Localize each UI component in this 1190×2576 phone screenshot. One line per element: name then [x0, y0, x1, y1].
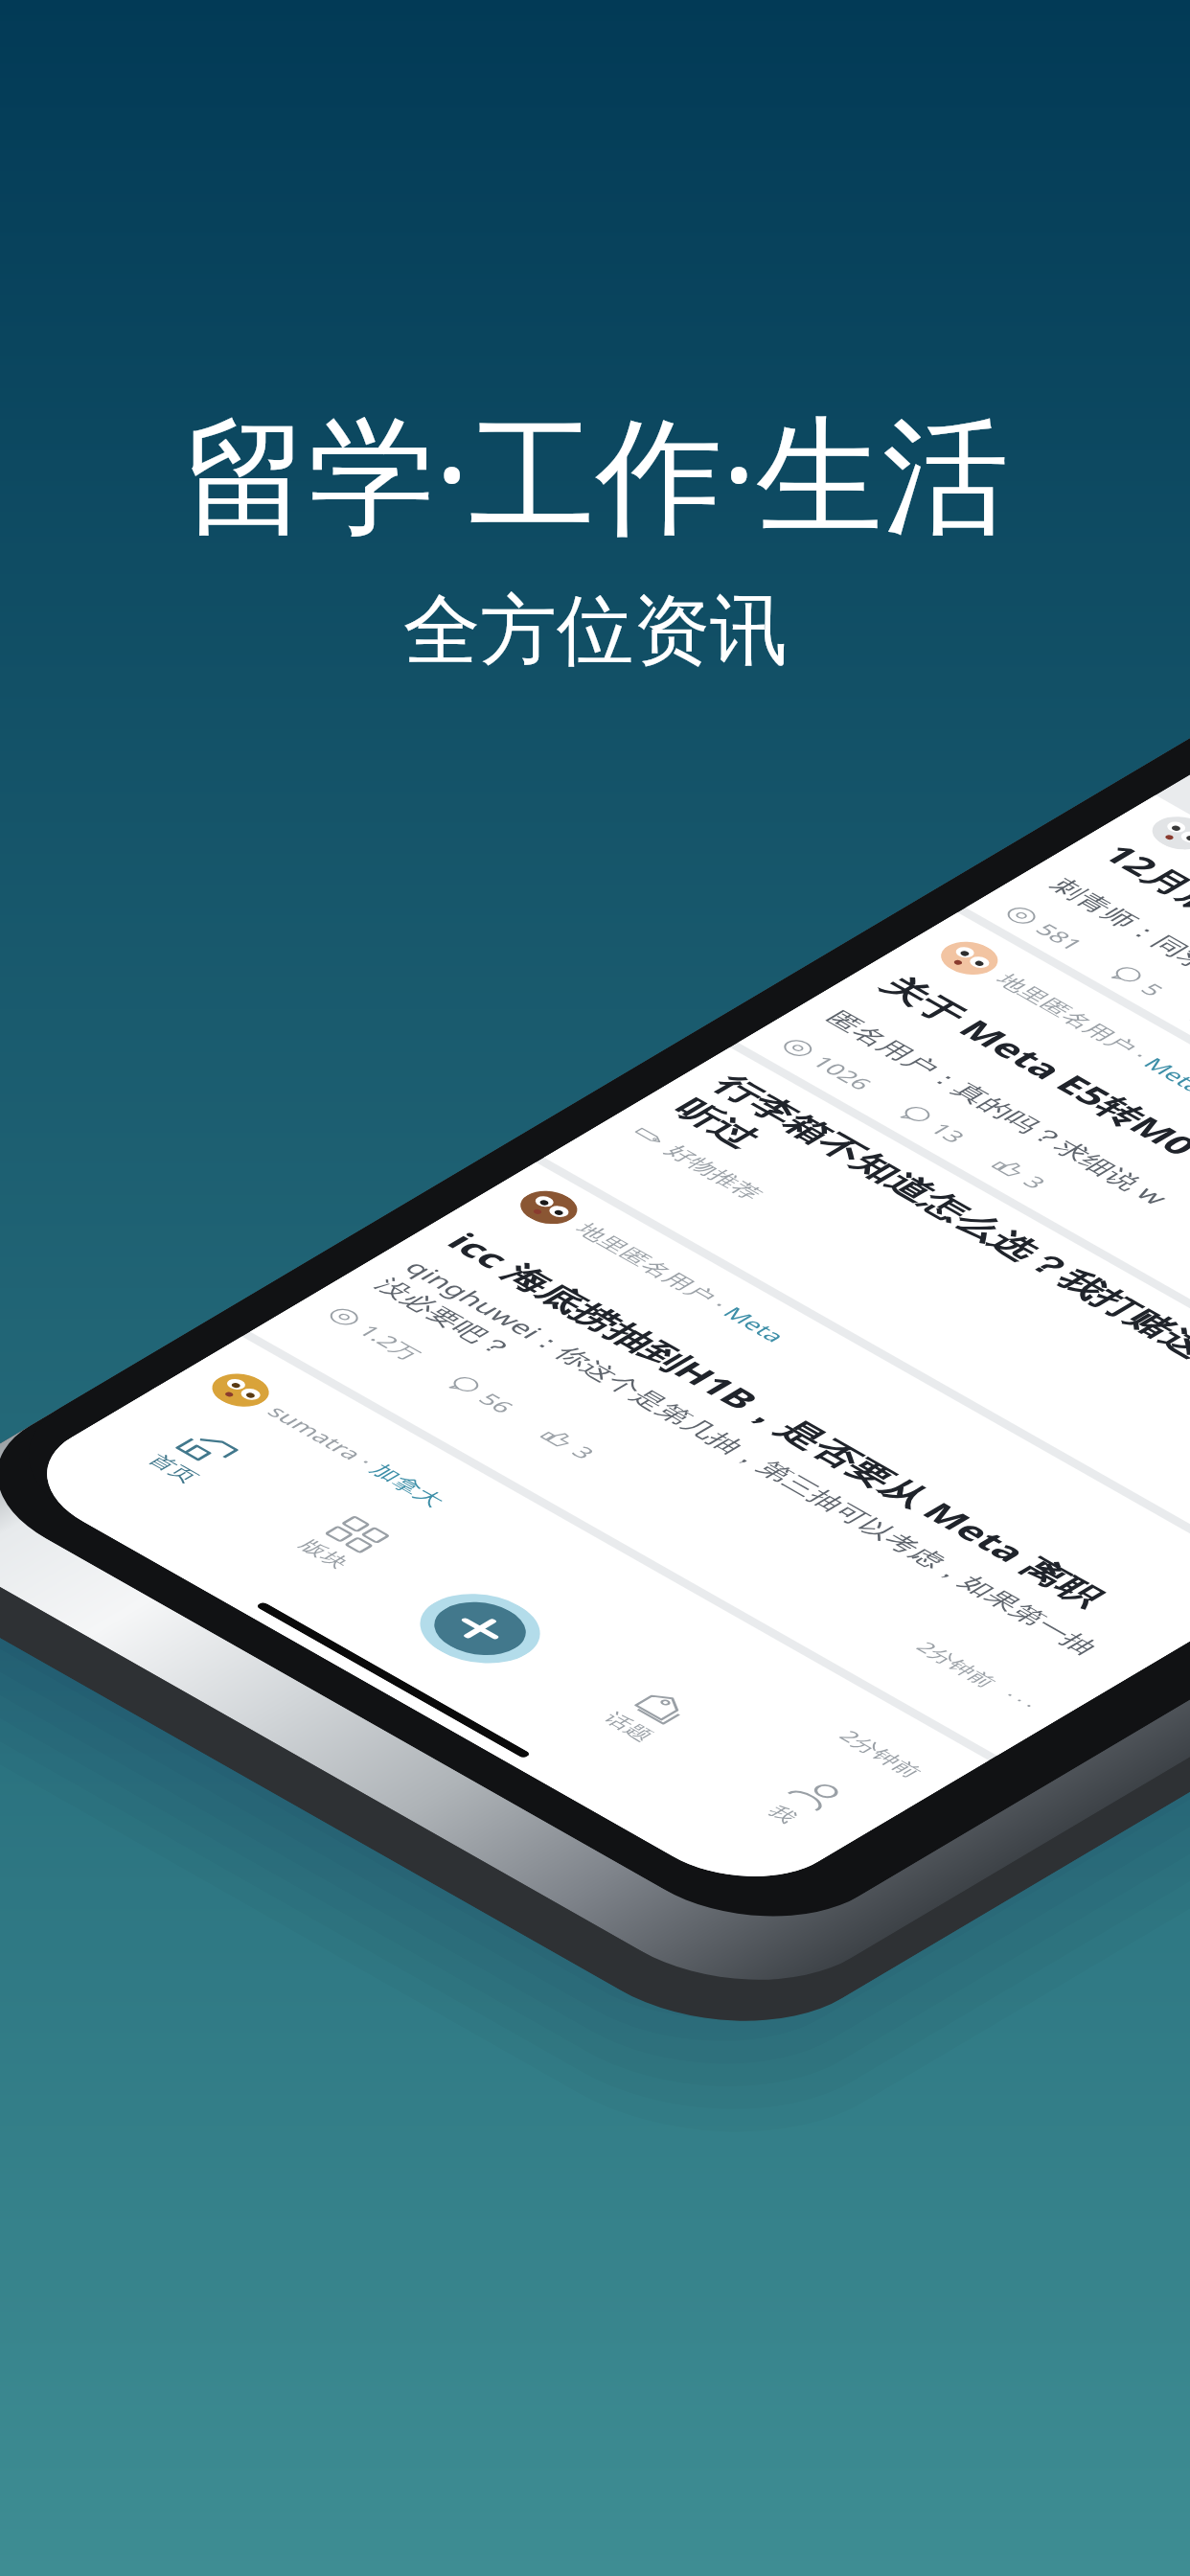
staticText: 首页: [142, 1450, 205, 1486]
staticText: 全方位资讯: [403, 583, 787, 679]
staticText: ·: [345, 1449, 388, 1474]
staticText: 留学·工作·生活: [182, 385, 1009, 558]
button[interactable]: 版块: [244, 1493, 429, 1600]
staticText: sumatra: [260, 1401, 370, 1464]
staticText: 刺青师：同求，一起啊，抱团取暖: [1042, 874, 1190, 1105]
staticText: · · ·: [997, 1687, 1042, 1713]
staticText: 2分钟前: [910, 1637, 1004, 1691]
staticText: 匿名用户：真的吗？求细说 w: [819, 1005, 1177, 1210]
staticText: 我: [762, 1802, 804, 1827]
staticText: 好物推荐: [659, 1141, 769, 1204]
button[interactable]: New post: [416, 1591, 545, 1666]
staticText: Meta: [1137, 1053, 1190, 1098]
button[interactable]: 话题: [549, 1666, 734, 1773]
staticText: 13: [923, 1118, 973, 1147]
button[interactable]: sumatra: [150, 1336, 989, 1815]
button[interactable]: 首页: [93, 1408, 278, 1514]
staticText: 581: [1028, 919, 1091, 955]
button[interactable]: 地里匿名用户: [250, 1162, 1190, 1756]
staticText: 话题: [597, 1709, 660, 1745]
staticText: 行李箱不知道怎么选？我打赌这个牌子你没 听过: [663, 1069, 1190, 1485]
staticText: 加拿大: [364, 1460, 451, 1511]
staticText: Meta: [716, 1302, 793, 1347]
staticText: 地里匿名用户: [990, 970, 1143, 1057]
staticText: 5: [1134, 979, 1171, 1001]
staticText: 2分钟前: [833, 1726, 930, 1782]
staticText: 关于 Meta E5转M0: [870, 968, 1190, 1162]
staticText: 12月底入职 Amazon, 求组队: [1092, 837, 1190, 1114]
staticText: 3: [1016, 1171, 1054, 1193]
staticText: ·: [1119, 1043, 1162, 1068]
button[interactable]: 我: [703, 1753, 888, 1860]
staticText: icc 海底捞抽到H1B，是否要从 Meta 离职: [436, 1225, 1117, 1613]
staticText: 1.2万: [351, 1320, 428, 1365]
staticText: 3: [565, 1442, 602, 1463]
button[interactable]: 地里匿名用户: [738, 912, 1190, 1466]
button[interactable]: 地里匿名用户: [966, 795, 1190, 1332]
staticText: 地里匿名用户: [570, 1219, 723, 1307]
staticText: 1026: [805, 1051, 880, 1095]
staticText: ·: [698, 1292, 741, 1317]
staticText: 56: [471, 1389, 522, 1418]
staticText: 版块: [293, 1536, 356, 1572]
staticText: qinghuwei：你这个是第几抽，第三抽可以考虑，如果第一抽没必要吧？: [368, 1255, 1125, 1686]
button[interactable]: 行李箱不知道怎么选？我打赌这个牌子你没 听过: [544, 1047, 1190, 1581]
